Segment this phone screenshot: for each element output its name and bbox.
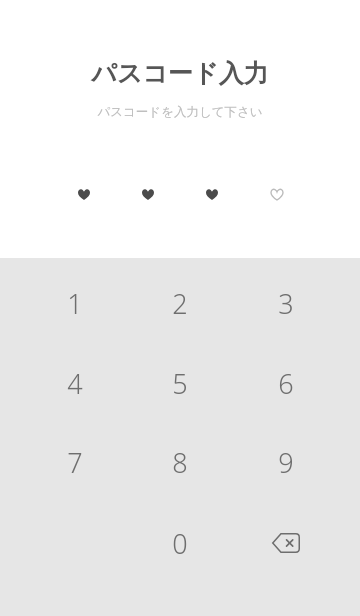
staticText: 1	[67, 285, 83, 322]
button[interactable]: 2	[142, 275, 218, 331]
button[interactable]: 8	[142, 434, 218, 490]
staticText: 3	[278, 285, 294, 322]
button[interactable]: 1	[37, 275, 113, 331]
staticText: 6	[278, 365, 294, 402]
staticText: パスコード入力	[91, 58, 269, 89]
staticText: 9	[278, 444, 294, 481]
staticText: 4	[67, 365, 83, 402]
staticText: 8	[172, 444, 188, 481]
staticText: 7	[67, 444, 83, 481]
button[interactable]: 5	[142, 355, 218, 411]
staticText: 0	[172, 525, 188, 562]
button[interactable]: 7	[37, 434, 113, 490]
button[interactable]: 0	[142, 515, 218, 571]
button[interactable]: 3	[248, 275, 324, 331]
staticText: パスコードを入力して下さい	[97, 104, 263, 120]
button[interactable]: Backspace	[248, 515, 324, 571]
button[interactable]: 6	[248, 355, 324, 411]
button[interactable]: 4	[37, 355, 113, 411]
staticText: 5	[172, 365, 188, 402]
staticText: 2	[172, 285, 188, 322]
button[interactable]: 9	[248, 434, 324, 490]
